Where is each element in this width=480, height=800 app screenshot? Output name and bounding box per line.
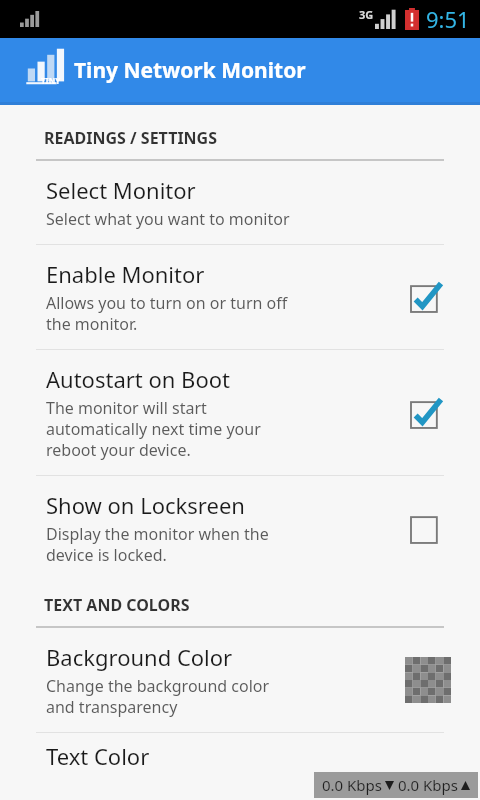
staticText: 0.0 Kbps bbox=[322, 775, 383, 795]
staticText: 9:51 bbox=[426, 4, 470, 34]
staticText: Select Monitor bbox=[46, 175, 196, 205]
button[interactable]: 0.0 Kbps bbox=[314, 772, 478, 798]
staticText: Text Color bbox=[46, 741, 150, 767]
button[interactable]: Show on Locksreen bbox=[0, 476, 480, 580]
staticText: Autostart on Boot bbox=[46, 364, 230, 394]
staticText: Tiny Network Monitor bbox=[74, 56, 306, 85]
button[interactable]: Enable Monitor bbox=[0, 245, 480, 349]
staticText: TINY bbox=[41, 75, 61, 86]
staticText: Change the background color and transpar… bbox=[46, 675, 270, 718]
staticText: READINGS / SETTINGS bbox=[44, 127, 218, 149]
staticText: 3G bbox=[359, 7, 374, 22]
staticText: Select what you want to monitor bbox=[46, 208, 290, 230]
staticText: The monitor will start automatically nex… bbox=[46, 397, 261, 461]
staticText: Display the monitor when the device is l… bbox=[46, 523, 269, 566]
button[interactable]: Checked bbox=[411, 280, 445, 314]
staticText: TEXT AND COLORS bbox=[44, 594, 190, 616]
button[interactable]: Text Color bbox=[0, 733, 480, 767]
button[interactable]: Autostart on Boot bbox=[0, 350, 480, 475]
button[interactable]: Background Color bbox=[0, 628, 480, 732]
button[interactable]: Background color swatch bbox=[405, 657, 451, 703]
staticText: Enable Monitor bbox=[46, 259, 205, 289]
button[interactable]: Unchecked bbox=[411, 511, 445, 545]
staticText: Background Color bbox=[46, 642, 233, 672]
button[interactable]: Select Monitor bbox=[0, 161, 480, 244]
staticText: Allows you to turn on or turn off the mo… bbox=[46, 292, 288, 335]
staticText: 0.0 Kbps bbox=[398, 775, 459, 795]
button[interactable]: Checked bbox=[411, 396, 445, 430]
staticText: Show on Locksreen bbox=[46, 490, 245, 520]
